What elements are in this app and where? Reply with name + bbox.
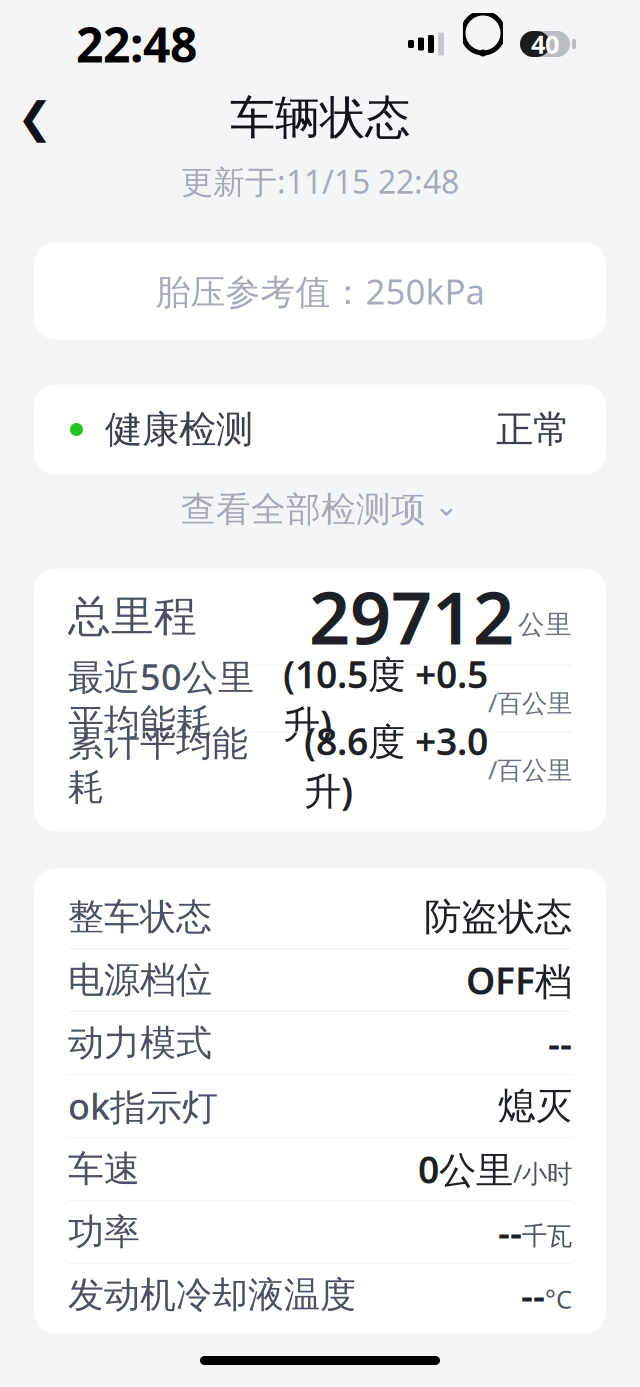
staticText: --	[498, 1207, 522, 1257]
button[interactable]: 查看全部检测项	[181, 488, 459, 530]
staticText: 防盗状态	[424, 894, 572, 940]
staticText: 健康检测	[105, 407, 253, 452]
staticText: ok指示灯	[68, 1082, 218, 1130]
staticText: 动力模式	[68, 1021, 212, 1065]
staticText: 更新于:11/15 22:48	[181, 160, 459, 202]
button[interactable]: 健康检测	[34, 384, 606, 474]
staticText: 22:48	[76, 12, 197, 76]
staticText: --	[548, 1018, 572, 1068]
staticText: 公里	[518, 608, 572, 641]
staticText: ⌄	[434, 489, 459, 522]
staticText: /小时	[513, 1156, 572, 1190]
staticText: 整车状态	[68, 895, 212, 939]
staticText: (8.6度 +3.0升)	[304, 716, 488, 815]
staticText: OFF档	[466, 955, 572, 1005]
staticText: 车速	[68, 1147, 140, 1191]
staticText: /百公里	[488, 753, 572, 786]
staticText: 电源档位	[68, 958, 212, 1002]
staticText: (10.5度 +0.5升)	[283, 649, 488, 748]
button[interactable]: 返回	[0, 88, 70, 148]
staticText: °C	[545, 1282, 572, 1316]
staticText: 千瓦	[522, 1220, 572, 1251]
staticText: 查看全部检测项	[181, 488, 426, 531]
staticText: ❮	[17, 94, 53, 142]
staticText: 车辆状态	[230, 90, 410, 146]
staticText: 0公里	[418, 1144, 513, 1194]
staticText: --	[521, 1270, 545, 1320]
staticText: 40	[531, 27, 559, 61]
staticText: 累计平均能耗	[68, 721, 248, 810]
staticText: 功率	[68, 1210, 140, 1254]
staticText: 胎压参考值：250kPa	[155, 268, 484, 314]
staticText: 总里程	[68, 590, 197, 643]
staticText: 最近50公里平均能耗	[68, 652, 254, 744]
staticText: 29712	[309, 569, 514, 664]
staticText: 熄灭	[498, 1083, 572, 1129]
staticText: 正常	[496, 407, 570, 452]
staticText: /百公里	[488, 686, 572, 719]
staticText: 发动机冷却液温度	[68, 1273, 356, 1317]
